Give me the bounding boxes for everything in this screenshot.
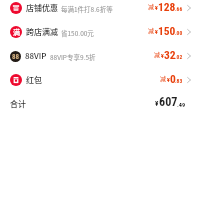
staticText: .00 (175, 30, 183, 36)
staticText: 88VIP专享9.5折 (50, 52, 96, 61)
staticText: 150 (158, 24, 176, 37)
staticText: 每满1件打8.6折等 (61, 4, 113, 13)
staticText: 省150.00元 (61, 28, 94, 37)
staticText: .49 (177, 101, 186, 108)
staticText: ¥ (167, 77, 170, 84)
button[interactable]: 红包 (0, 68, 200, 92)
staticText: 128 (158, 0, 176, 13)
staticText: ¥ (155, 29, 158, 36)
staticText: 红包 (26, 74, 42, 86)
staticText: 减 (148, 26, 155, 35)
staticText: 跨店满减 (26, 26, 58, 38)
staticText: ¥ (155, 5, 158, 12)
staticText: 减 (160, 74, 167, 83)
button[interactable]: 店铺优惠 (0, 0, 200, 20)
staticText: 满 (13, 27, 20, 37)
button[interactable]: 88 (0, 44, 200, 68)
staticText: .83 (175, 78, 183, 84)
staticText: 减 (148, 2, 155, 11)
staticText: .02 (175, 54, 183, 60)
staticText: .66 (175, 6, 183, 12)
staticText: 88VIP (25, 50, 47, 62)
staticText: 合计 (10, 98, 26, 110)
staticText: 店铺优惠 (26, 2, 58, 14)
staticText: 32 (164, 48, 176, 61)
staticText: 607 (159, 95, 178, 109)
staticText: ¥ (155, 100, 159, 108)
staticText: 0 (170, 72, 176, 85)
staticText: ¥ (161, 53, 164, 60)
other: 店铺优惠 (10, 2, 22, 14)
button[interactable]: 满 (0, 20, 200, 44)
staticText: 减 (154, 50, 161, 59)
staticText: 88 (12, 53, 20, 61)
